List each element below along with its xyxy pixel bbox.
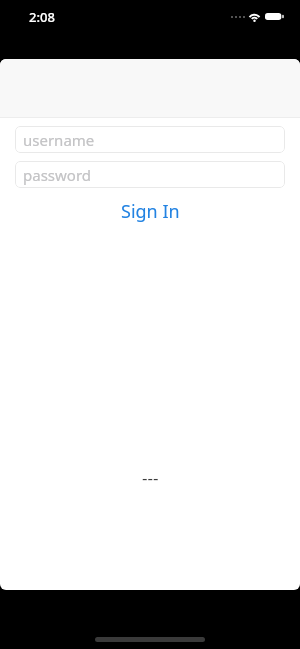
- staticText: 2:08: [29, 8, 55, 26]
- other: Battery: [265, 13, 284, 20]
- other: Wi-Fi: [248, 13, 261, 21]
- staticText: username: [23, 130, 95, 150]
- staticText: ---: [142, 466, 159, 489]
- staticText: Sign In: [121, 199, 180, 224]
- other: Cellular signal: [231, 16, 247, 18]
- button[interactable]: Sign In: [0, 198, 300, 225]
- button[interactable]: password: [15, 161, 285, 188]
- other: Home indicator: [95, 637, 205, 642]
- button[interactable]: username: [15, 126, 285, 153]
- staticText: password: [23, 165, 91, 185]
